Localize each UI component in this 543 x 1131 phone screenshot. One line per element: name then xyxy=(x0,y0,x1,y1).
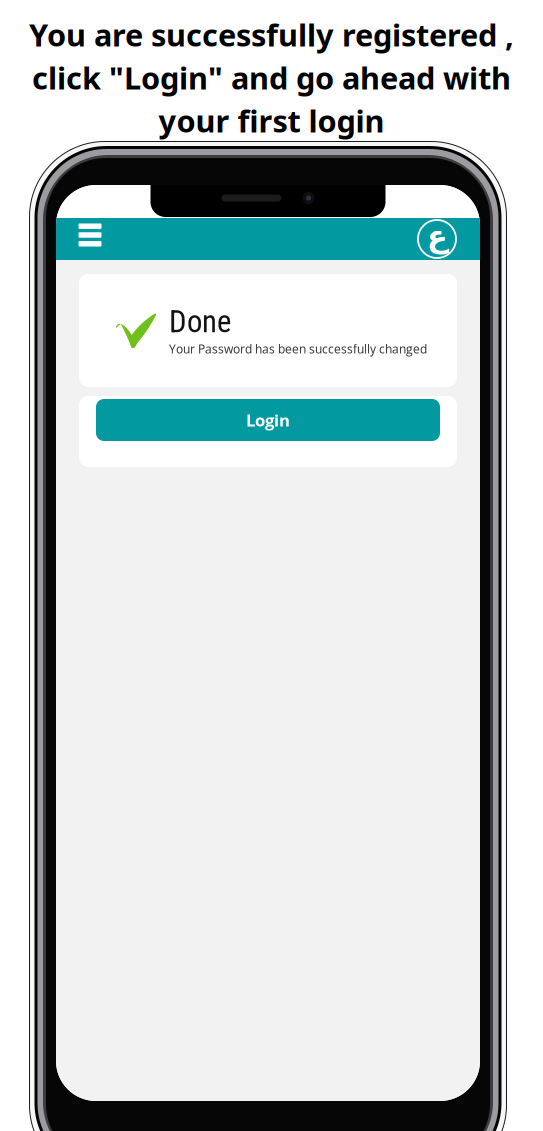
staticText: click "Login" and go ahead with xyxy=(32,57,511,98)
staticText: Done xyxy=(169,304,231,340)
staticText: Your Password has been successfully chan… xyxy=(169,341,427,357)
button[interactable]: Account xyxy=(417,219,457,259)
staticText: Login xyxy=(246,409,290,431)
button[interactable]: Login xyxy=(96,399,440,441)
staticText: ع xyxy=(426,219,447,255)
staticText: your first login xyxy=(158,100,384,141)
button[interactable]: Menu xyxy=(73,222,107,256)
staticText: You are successfully registered , xyxy=(29,14,514,55)
